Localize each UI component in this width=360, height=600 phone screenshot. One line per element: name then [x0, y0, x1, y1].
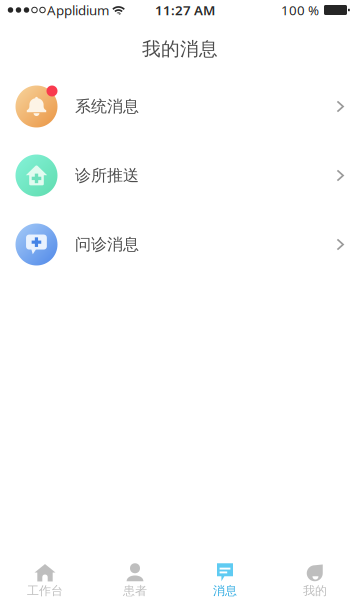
staticText: 诊所推送: [75, 166, 139, 185]
staticText: 工作台: [27, 583, 63, 598]
staticText: 我的: [303, 583, 327, 598]
staticText: 系统消息: [75, 97, 139, 116]
staticText: 消息: [213, 583, 237, 598]
staticText: 我的消息: [142, 37, 218, 60]
staticText: 11:27 AM: [155, 1, 215, 19]
button[interactable]: 诊所推送: [0, 141, 360, 210]
button[interactable]: 问诊消息: [0, 210, 360, 279]
staticText: 100 %: [281, 1, 319, 19]
staticText: 问诊消息: [75, 235, 139, 254]
staticText: Applidium: [47, 1, 109, 19]
button[interactable]: 患者: [90, 549, 180, 600]
staticText: 患者: [123, 583, 147, 598]
button[interactable]: 消息: [180, 549, 270, 600]
button[interactable]: 工作台: [0, 549, 90, 600]
button[interactable]: 系统消息: [0, 72, 360, 141]
button[interactable]: 我的: [270, 549, 360, 600]
